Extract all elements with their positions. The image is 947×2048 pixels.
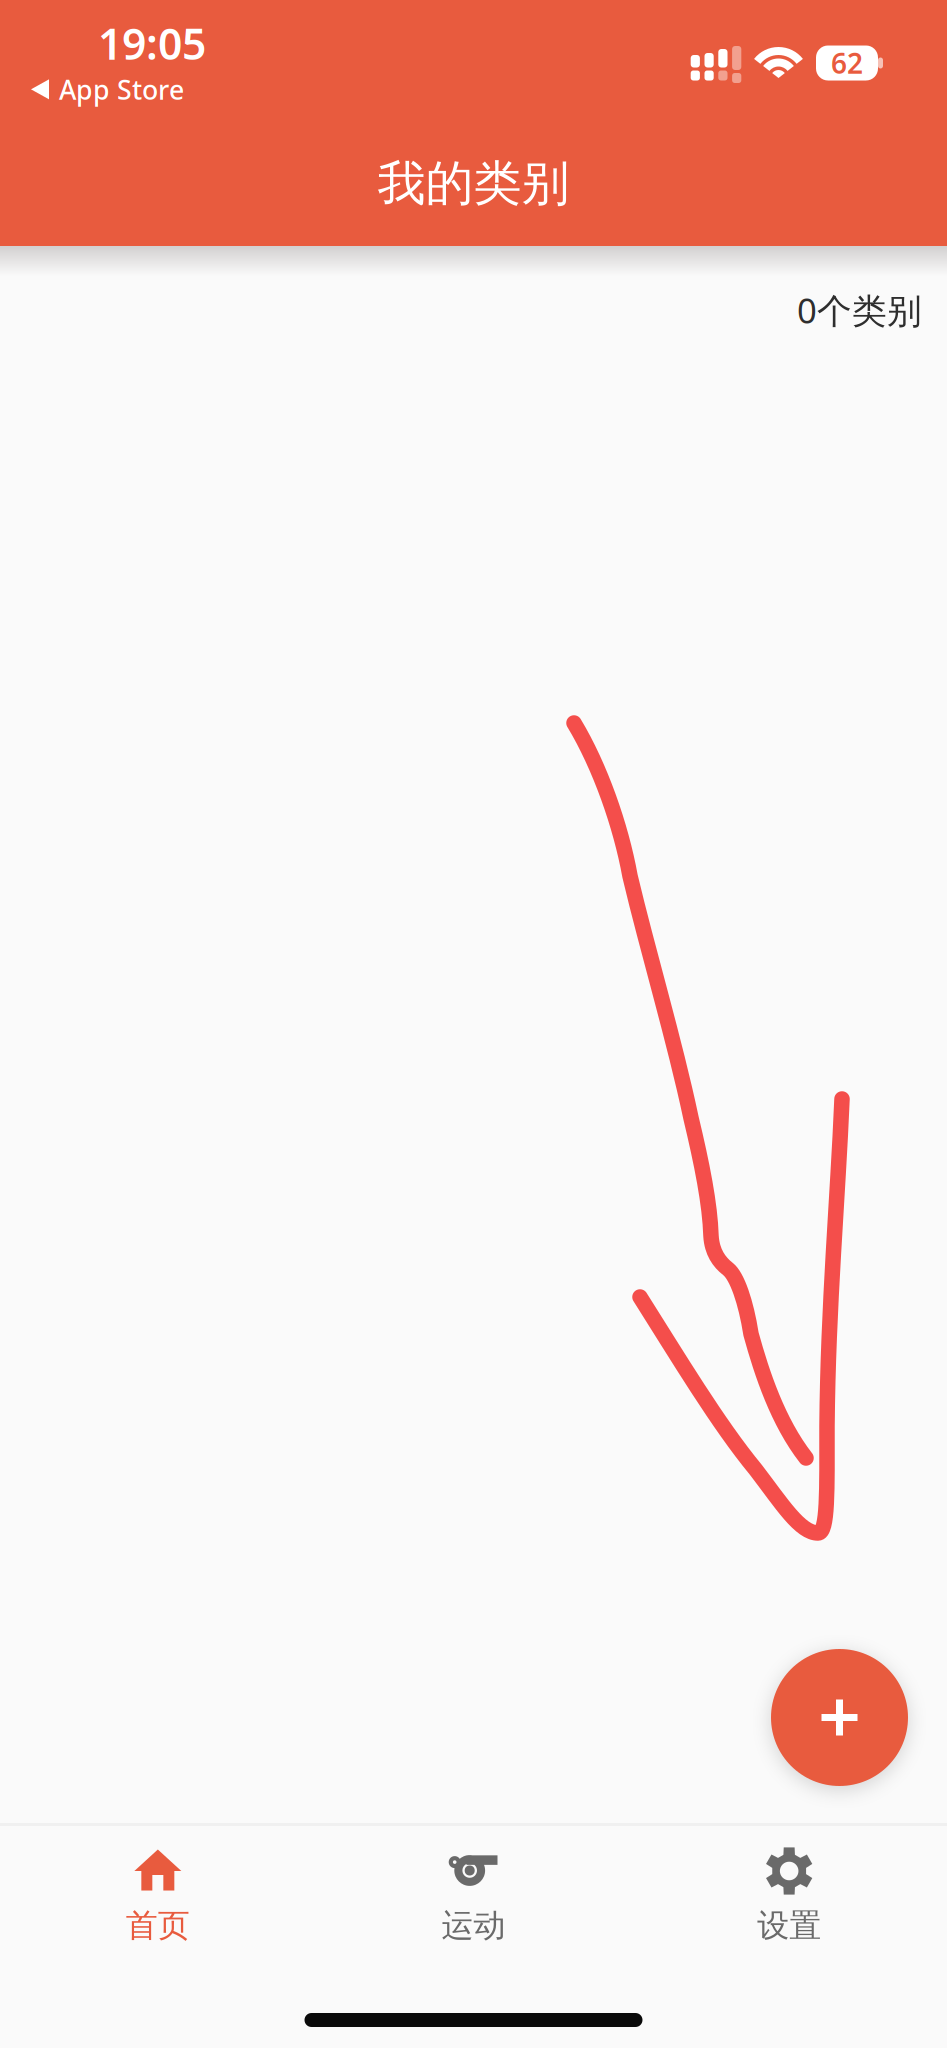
staticText: 62	[831, 44, 863, 82]
staticText: 19:05	[98, 15, 206, 72]
staticText: App Store	[59, 72, 184, 107]
staticText: 运动	[441, 1906, 505, 1945]
button[interactable]: 设置	[631, 1845, 947, 1945]
button[interactable]: 首页	[0, 1845, 316, 1945]
staticText: 首页	[126, 1906, 190, 1945]
staticText: 我的类别	[377, 154, 569, 213]
button[interactable]: 添加类别	[771, 1649, 908, 1786]
staticText: 0个类别	[797, 287, 922, 333]
button[interactable]: 运动	[316, 1845, 631, 1945]
staticText: 设置	[757, 1906, 821, 1945]
